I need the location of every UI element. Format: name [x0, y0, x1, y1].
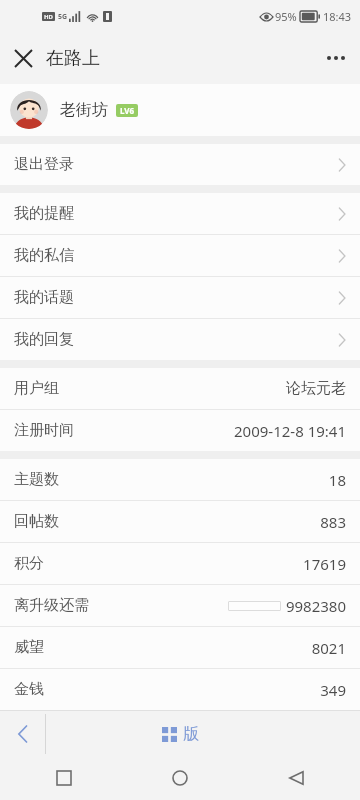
button[interactable]: 我的提醒	[0, 193, 360, 234]
staticText: 回帖数	[14, 512, 59, 531]
button[interactable]: 威望	[0, 627, 360, 668]
button[interactable]: 退出登录	[0, 144, 360, 185]
button[interactable]: More options	[312, 32, 360, 84]
staticText: 用户组	[14, 379, 59, 398]
staticText: 我的提醒	[14, 204, 74, 223]
button[interactable]: 我的话题	[0, 277, 360, 318]
button[interactable]: Back	[272, 756, 320, 800]
staticText: 95%	[275, 9, 297, 24]
staticText: 积分	[14, 554, 44, 573]
staticText: 论坛元老	[286, 379, 346, 398]
button[interactable]: 版	[162, 724, 199, 744]
staticText: 18	[328, 470, 346, 490]
staticText: LV6	[120, 105, 135, 116]
staticText: 18:43	[323, 9, 352, 24]
staticText: 注册时间	[14, 421, 74, 440]
button[interactable]: Close	[0, 32, 46, 84]
staticText: 我的私信	[14, 246, 74, 265]
button[interactable]: 金钱	[0, 669, 360, 710]
button[interactable]: 注册时间	[0, 410, 360, 451]
staticText: 老街坊	[60, 100, 108, 120]
staticText: 在路上	[46, 47, 100, 70]
staticText: 883	[320, 512, 346, 532]
button[interactable]: 回帖数	[0, 501, 360, 542]
staticText: 主题数	[14, 470, 59, 489]
staticText: 威望	[14, 638, 44, 657]
staticText: 版	[183, 724, 199, 744]
staticText: 9982380	[285, 596, 346, 616]
staticText: 17619	[303, 554, 346, 574]
button[interactable]: Recents	[40, 756, 88, 800]
button[interactable]: 我的回复	[0, 319, 360, 360]
staticText: HD	[44, 13, 53, 21]
staticText: 2009-12-8 19:41	[234, 421, 346, 441]
staticText: 349	[320, 680, 346, 700]
staticText: 我的话题	[14, 288, 74, 307]
button[interactable]: 用户组	[0, 368, 360, 409]
staticText: 退出登录	[14, 155, 74, 174]
button[interactable]: Home	[156, 756, 204, 800]
button[interactable]: Back	[0, 711, 45, 756]
button[interactable]: 老街坊	[0, 84, 360, 136]
button[interactable]: 离升级还需	[0, 585, 360, 626]
button[interactable]: 我的私信	[0, 235, 360, 276]
button[interactable]: 积分	[0, 543, 360, 584]
staticText: 8021	[311, 638, 346, 658]
staticText: 我的回复	[14, 330, 74, 349]
button[interactable]: 主题数	[0, 459, 360, 500]
staticText: 5G	[58, 12, 68, 22]
staticText: 离升级还需	[14, 596, 89, 615]
staticText: 金钱	[14, 680, 44, 699]
